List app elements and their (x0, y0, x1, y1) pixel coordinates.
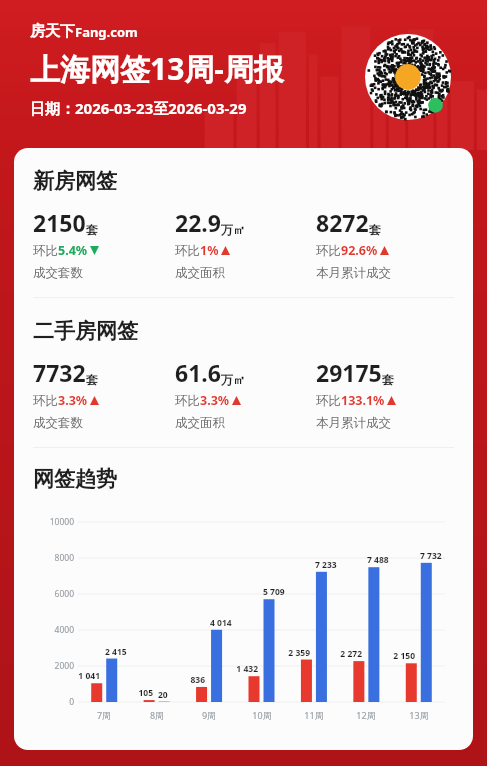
button[interactable]: 8272 (316, 207, 457, 281)
button[interactable]: 2150 (33, 207, 175, 281)
staticText: 105 (123, 687, 153, 699)
button[interactable]: 61.6 (175, 357, 316, 431)
staticText: ㎡ (233, 372, 245, 387)
staticText: 10周 (247, 709, 277, 721)
staticText: 万 (221, 222, 233, 237)
staticText: 2 359 (280, 647, 310, 659)
staticText: 2 150 (385, 650, 415, 662)
staticText: 5 709 (263, 586, 295, 598)
staticText: 套 (86, 222, 98, 237)
staticText: 环比 (316, 393, 341, 409)
staticText: 20 (158, 689, 190, 701)
staticText: 环比 (33, 243, 58, 259)
staticText: 房天下 (30, 22, 75, 41)
staticText: 成交面积 (175, 415, 225, 431)
button[interactable]: 二手房网签 (33, 318, 138, 344)
staticText: 7周 (89, 709, 119, 721)
staticText: 7 488 (367, 554, 399, 566)
staticText: 网签趋势 (33, 466, 117, 492)
staticText: 环比 (175, 243, 200, 259)
staticText: 9周 (194, 709, 224, 721)
staticText: 22.9 (175, 207, 221, 238)
staticText: 万 (221, 372, 233, 387)
staticText: 8周 (142, 709, 172, 721)
staticText: 1% (200, 242, 219, 259)
button[interactable]: 7732 (33, 357, 175, 431)
staticText: 3.3% (58, 392, 88, 409)
staticText: 套 (382, 372, 394, 387)
staticText: 2 272 (332, 648, 362, 660)
staticText: 133.1% (341, 392, 385, 409)
staticText: 3.3% (200, 392, 230, 409)
button[interactable]: 扫码二维码 (365, 34, 451, 120)
staticText: 0 (33, 696, 74, 708)
button[interactable]: 22.9 (175, 207, 316, 281)
staticText: 10000 (33, 516, 74, 528)
staticText: 7 732 (420, 550, 452, 562)
staticText: 2000 (33, 660, 74, 672)
staticText: 6000 (33, 588, 74, 600)
staticText: 11周 (299, 709, 329, 721)
staticText: 836 (175, 674, 205, 686)
staticText: 成交套数 (33, 265, 83, 281)
staticText: 套 (369, 222, 381, 237)
staticText: 12周 (351, 709, 381, 721)
staticText: 1 041 (70, 670, 100, 682)
staticText: 8272 (316, 207, 369, 238)
staticText: 4 014 (210, 617, 242, 629)
staticText: ㎡ (233, 222, 245, 237)
button[interactable]: 新房网签 (33, 168, 117, 194)
staticText: 5.4% (58, 242, 88, 259)
staticText: 环比 (33, 393, 58, 409)
staticText: 上海网签13周-周报 (30, 48, 284, 89)
staticText: 1 432 (228, 663, 258, 675)
staticText: 环比 (175, 393, 200, 409)
staticText: 日期：2026-03-23至2026-03-29 (30, 98, 247, 118)
staticText: 成交面积 (175, 265, 225, 281)
staticText: 本月累计成交 (316, 265, 391, 281)
staticText: 61.6 (175, 357, 221, 388)
staticText: 本月累计成交 (316, 415, 391, 431)
staticText: 7732 (33, 357, 86, 388)
staticText: 29175 (316, 357, 382, 388)
staticText: 4000 (33, 624, 74, 636)
staticText: 2 415 (105, 646, 137, 658)
staticText: 7 233 (315, 559, 347, 571)
staticText: 成交套数 (33, 415, 83, 431)
staticText: 92.6% (341, 242, 378, 259)
staticText: 套 (86, 372, 98, 387)
button[interactable]: 29175 (316, 357, 457, 431)
staticText: 8000 (33, 552, 74, 564)
staticText: Fang.com (75, 23, 138, 41)
staticText: 13周 (404, 709, 434, 721)
staticText: 2150 (33, 207, 86, 238)
staticText: 环比 (316, 243, 341, 259)
